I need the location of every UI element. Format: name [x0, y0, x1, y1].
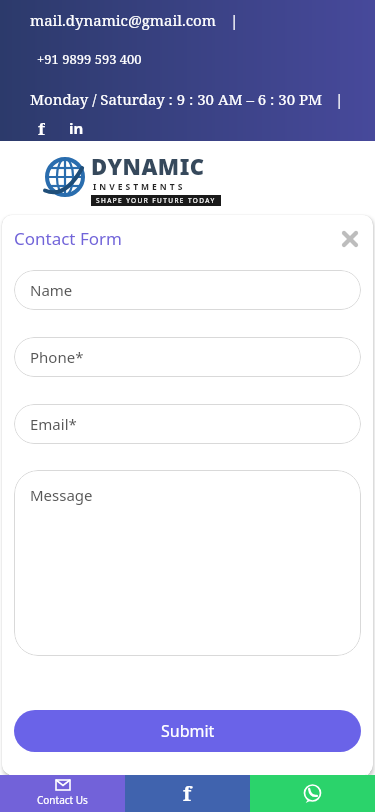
button[interactable]: Submit [14, 710, 361, 752]
staticText: +91 9899 593 400 [37, 50, 142, 68]
staticText: | [335, 89, 344, 109]
staticText: Monday / Saturday : 9 : 30 AM – 6 : 30 P… [30, 89, 323, 109]
staticText: Phone* [30, 347, 84, 367]
button[interactable]: Name [14, 270, 361, 310]
button[interactable]: in [64, 117, 88, 139]
staticText: | [230, 10, 239, 30]
staticText: f [183, 780, 192, 807]
staticText: in [69, 118, 84, 138]
staticText: Submit [161, 720, 215, 742]
staticText: Email* [30, 414, 77, 434]
button[interactable] [339, 228, 361, 250]
staticText: SHAPE YOUR FUTURE TODAY [96, 196, 216, 205]
staticText: INVESTMENTS [93, 181, 186, 193]
button[interactable]: f [125, 775, 250, 812]
staticText: mail.dynamic@gmail.com [30, 10, 216, 30]
staticText: Name [30, 280, 73, 300]
button[interactable]: f [30, 117, 52, 139]
staticText: Message [30, 485, 93, 505]
staticText: Contact Us [37, 793, 88, 807]
button[interactable]: Message [14, 470, 361, 656]
button[interactable] [250, 775, 375, 812]
staticText: Contact Form [14, 227, 122, 250]
button[interactable]: Contact Us [0, 775, 125, 812]
button[interactable]: Email* [14, 404, 361, 444]
staticText: f [38, 117, 45, 139]
button[interactable]: Phone* [14, 337, 361, 377]
staticText: DYNAMIC [91, 151, 205, 181]
